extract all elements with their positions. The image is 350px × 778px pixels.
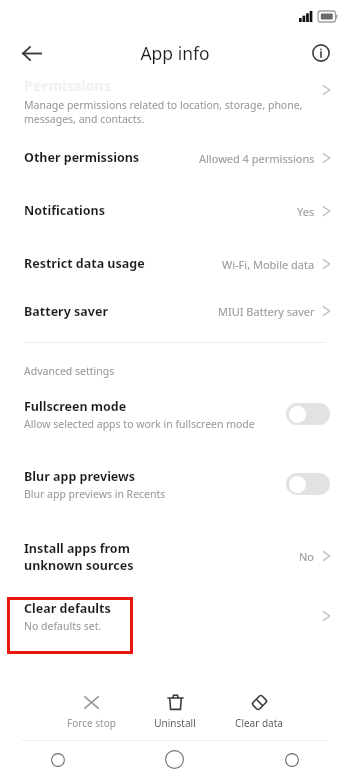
button[interactable]: Home [116, 741, 233, 778]
staticText: Notifications [24, 202, 106, 219]
staticText: Other permissions [24, 149, 140, 166]
staticText: Wi-Fi, Mobile data [222, 257, 315, 272]
button[interactable]: Uninstall [144, 682, 206, 740]
button[interactable]: Permissions [0, 74, 350, 131]
button[interactable]: Restrict data usage [0, 237, 350, 290]
staticText: MIUI Battery saver [218, 304, 315, 319]
button[interactable]: Force stop [60, 682, 122, 740]
staticText: Manage permissions related to location, … [24, 98, 303, 126]
button[interactable]: Install apps from unknown sources [0, 531, 350, 581]
button[interactable]: Other permissions [0, 131, 350, 184]
staticText: Force stop [67, 716, 116, 730]
button[interactable]: Recents [0, 741, 116, 778]
button[interactable]: App details [305, 37, 337, 69]
staticText: No defaults set. [24, 619, 102, 633]
button[interactable]: Back [14, 36, 48, 70]
button[interactable]: Battery saver [0, 290, 350, 332]
staticText: No [299, 549, 315, 564]
button[interactable]: Clear defaults [0, 593, 350, 639]
staticText: Fullscreen mode [24, 398, 127, 415]
button[interactable]: Fullscreen mode [286, 403, 330, 425]
staticText: Clear data [235, 716, 283, 730]
button[interactable]: Notifications [0, 184, 350, 237]
staticText: Uninstall [154, 716, 196, 730]
staticText: Battery saver [24, 303, 109, 320]
staticText: Allow selected apps to work in fullscree… [24, 417, 255, 431]
staticText: Blur app previews in Recents [24, 487, 166, 501]
staticText: App info [140, 41, 210, 65]
button[interactable]: Clear data [228, 682, 290, 740]
staticText: Yes [297, 204, 315, 219]
staticText: Blur app previews [24, 468, 136, 485]
staticText: Clear defaults [24, 600, 111, 617]
staticText: Install apps from unknown sources [24, 540, 134, 573]
button[interactable]: Blur app previews [286, 473, 330, 495]
button[interactable]: Blur app previews [0, 465, 350, 503]
staticText: Advanced settings [24, 364, 115, 378]
staticText: Allowed 4 permissions [199, 151, 315, 166]
staticText: Permissions [24, 75, 112, 95]
button[interactable]: Back [233, 741, 350, 778]
staticText: Restrict data usage [24, 255, 145, 272]
button[interactable]: Fullscreen mode [0, 395, 350, 433]
